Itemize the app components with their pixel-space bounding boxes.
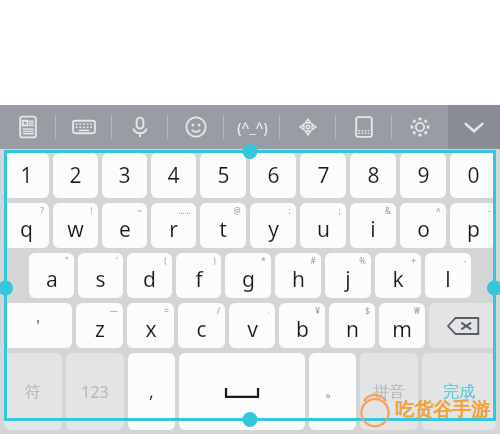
staticText: t xyxy=(219,215,227,244)
staticText: ? xyxy=(40,205,44,216)
staticText: 吃货谷手游 xyxy=(395,398,490,422)
staticText: u xyxy=(317,215,330,244)
button[interactable]: ₩ xyxy=(379,303,425,348)
button[interactable]: = xyxy=(127,303,174,348)
staticText: = xyxy=(164,305,169,316)
button[interactable]: $ xyxy=(329,303,375,348)
button[interactable]: 。 xyxy=(309,353,356,430)
staticText: 3 xyxy=(118,161,131,190)
button[interactable]: ^ xyxy=(400,203,446,248)
staticText: . xyxy=(267,305,270,316)
button[interactable]: & xyxy=(350,203,396,248)
staticText: m xyxy=(392,315,412,344)
button[interactable]: 3 xyxy=(102,153,147,198)
button[interactable]: / xyxy=(178,303,225,348)
button[interactable]: 6 xyxy=(250,153,296,198)
staticText: # xyxy=(310,255,316,266)
staticText: y xyxy=(268,215,279,244)
button[interactable]: Kaomoji xyxy=(224,105,280,149)
staticText: 8 xyxy=(367,161,380,190)
staticText: : xyxy=(288,205,291,216)
button[interactable]: ' xyxy=(4,303,72,348)
staticText: x xyxy=(145,315,157,344)
staticText: b xyxy=(296,315,309,344)
button[interactable]: Delete xyxy=(429,303,496,348)
button[interactable]: Hide keyboard xyxy=(448,105,500,149)
staticText: * xyxy=(261,255,266,266)
button[interactable]: : xyxy=(250,203,296,248)
button[interactable]: 符 xyxy=(4,353,62,430)
staticText: n xyxy=(346,315,359,344)
button[interactable]: …… xyxy=(151,203,196,248)
staticText: + xyxy=(411,255,416,266)
staticText: - xyxy=(488,205,491,216)
staticText: 1 xyxy=(20,161,33,190)
button[interactable]: 7 xyxy=(300,153,346,198)
button[interactable]: % xyxy=(325,253,371,298)
staticText: $ xyxy=(365,305,370,316)
button[interactable]: ~ xyxy=(102,203,147,248)
staticText: 123 xyxy=(81,381,109,403)
staticText: d xyxy=(143,265,156,294)
button[interactable]: Cursor control xyxy=(280,105,336,149)
button[interactable]: 123 xyxy=(66,353,124,430)
staticText: j xyxy=(345,265,351,294)
button[interactable]: 1 xyxy=(4,153,49,198)
button[interactable]: — xyxy=(76,303,123,348)
button[interactable]: @ xyxy=(200,203,246,248)
button[interactable]: ? xyxy=(4,203,49,248)
button[interactable]: 拼音 xyxy=(360,353,418,430)
button[interactable]: 8 xyxy=(350,153,396,198)
button[interactable]: 5 xyxy=(200,153,246,198)
button[interactable]: 0 xyxy=(450,153,496,198)
staticText: 6 xyxy=(267,161,280,190)
staticText: (^_^) xyxy=(237,118,268,137)
button[interactable]: 4 xyxy=(151,153,196,198)
staticText: f xyxy=(195,265,203,294)
button[interactable]: Emoji xyxy=(168,105,224,149)
staticText: 5 xyxy=(217,161,230,190)
staticText: z xyxy=(95,315,105,344)
staticText: ^ xyxy=(436,205,441,216)
button[interactable]: . xyxy=(229,303,275,348)
staticText: w xyxy=(67,215,84,244)
button[interactable]: ) xyxy=(176,253,221,298)
staticText: p xyxy=(467,215,480,244)
staticText: ₩ xyxy=(414,305,420,316)
button[interactable]: Keyboard layout xyxy=(56,105,112,149)
staticText: e xyxy=(119,215,131,244)
staticText: ¥ xyxy=(315,305,320,316)
button[interactable]: 完成 xyxy=(422,353,496,430)
button[interactable]: , xyxy=(128,353,175,430)
staticText: & xyxy=(385,205,391,216)
staticText: ~ xyxy=(137,205,142,216)
button[interactable]: * xyxy=(225,253,271,298)
staticText: , xyxy=(149,379,154,404)
staticText: h xyxy=(292,265,305,294)
button[interactable]: " xyxy=(29,253,74,298)
staticText: i xyxy=(370,215,376,244)
button[interactable]: Settings xyxy=(392,105,448,149)
button[interactable]: ! xyxy=(53,203,98,248)
staticText: 拼音 xyxy=(373,382,405,402)
staticText: v xyxy=(247,315,258,344)
button[interactable]: + xyxy=(375,253,421,298)
staticText: 2 xyxy=(69,161,82,190)
button[interactable]: Clipboard xyxy=(0,105,56,149)
staticText: 完成 xyxy=(443,382,475,402)
staticText: …… xyxy=(178,205,191,216)
button[interactable]: - xyxy=(425,253,471,298)
button[interactable]: Handwriting xyxy=(336,105,392,149)
button[interactable]: 9 xyxy=(400,153,446,198)
button[interactable]: ¥ xyxy=(279,303,325,348)
button[interactable]: ' xyxy=(78,253,123,298)
staticText: 4 xyxy=(167,161,180,190)
staticText: ; xyxy=(338,205,341,216)
button[interactable]: Voice input xyxy=(112,105,168,149)
button[interactable]: 2 xyxy=(53,153,98,198)
button[interactable]: Space xyxy=(179,353,305,430)
button[interactable]: # xyxy=(275,253,321,298)
button[interactable]: - xyxy=(450,203,496,248)
button[interactable]: ; xyxy=(300,203,346,248)
button[interactable]: ( xyxy=(127,253,172,298)
